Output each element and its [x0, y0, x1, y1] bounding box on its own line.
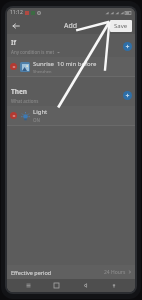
button[interactable]: Add If [123, 42, 132, 51]
button[interactable]: Back [79, 279, 92, 292]
button[interactable]: Keyboard [107, 279, 120, 292]
staticText: 11:12 [10, 9, 23, 16]
button[interactable]: Effective period [7, 265, 135, 279]
button[interactable]: Remove [10, 63, 17, 70]
button[interactable]: Home [50, 279, 63, 292]
button[interactable]: Remove [10, 112, 17, 119]
staticText: Add [64, 21, 78, 31]
button[interactable]: Recents [22, 279, 35, 292]
button[interactable]: Remove [7, 57, 135, 76]
staticText: Save [114, 22, 128, 30]
button[interactable]: Remove [7, 106, 135, 125]
staticText: Effective period [11, 269, 52, 276]
button[interactable]: Add Then [123, 91, 132, 100]
staticText: Shenzhen [33, 69, 52, 74]
staticText: What actions [11, 98, 39, 104]
staticText: If [11, 38, 17, 47]
staticText: Light [33, 108, 48, 116]
staticText: Any condition is met [11, 49, 55, 55]
staticText: Then [11, 87, 28, 96]
staticText: ON [33, 117, 40, 123]
staticText: 24 Hours [104, 269, 126, 276]
button[interactable]: Back [9, 19, 23, 33]
button[interactable]: Save [110, 20, 132, 32]
staticText: Sunrise [33, 60, 54, 68]
staticText: 10 min before [57, 60, 97, 68]
